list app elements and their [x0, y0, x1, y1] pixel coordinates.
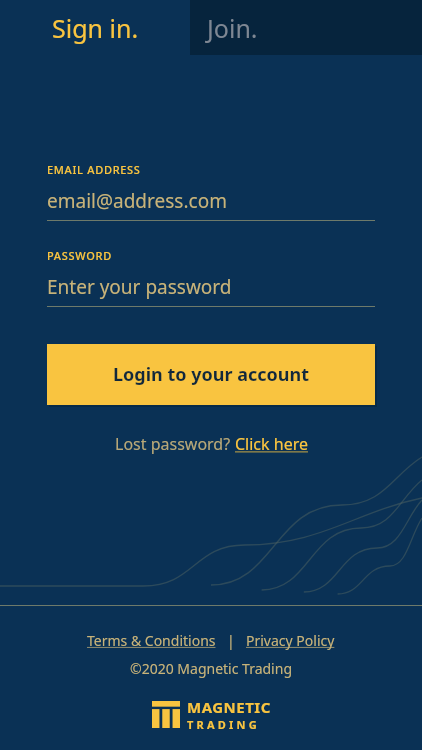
button[interactable]: Terms & Conditions	[87, 631, 216, 650]
button[interactable]: Enter your password	[47, 272, 375, 302]
staticText: PASSWORD	[47, 248, 112, 263]
button[interactable]: Privacy Policy	[246, 631, 335, 650]
staticText: Lost password?	[115, 433, 235, 455]
staticText: TRADING	[187, 717, 260, 732]
staticText: Terms & Conditions	[87, 631, 216, 650]
staticText: email@address.com	[47, 188, 227, 214]
staticText: Login to your account	[113, 362, 309, 387]
staticText: MAGNETIC	[187, 697, 271, 717]
staticText: EMAIL ADDRESS	[47, 162, 141, 177]
button[interactable]: Join.	[190, 0, 422, 55]
staticText: Sign in.	[52, 11, 139, 45]
button[interactable]: Sign in.	[0, 0, 190, 55]
staticText: Click here	[235, 433, 308, 455]
staticText: |	[216, 631, 246, 650]
staticText: ©2020 Magnetic Trading	[0, 659, 422, 678]
button[interactable]: email@address.com	[47, 186, 375, 216]
staticText: Join.	[207, 11, 258, 45]
button[interactable]: Click here	[235, 433, 308, 455]
staticText: Enter your password	[47, 274, 232, 300]
staticText: Privacy Policy	[246, 631, 335, 650]
button[interactable]: Magnetic Trading	[0, 697, 422, 732]
button[interactable]: Login to your account	[47, 344, 375, 405]
